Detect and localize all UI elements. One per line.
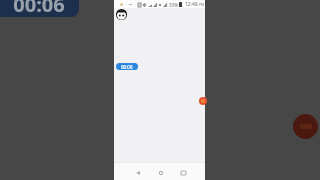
button[interactable]: Stop recording: [293, 114, 318, 139]
staticText: 00:06: [121, 64, 133, 70]
button[interactable]: 00:06: [116, 63, 138, 70]
button[interactable]: Home: [156, 168, 165, 177]
button[interactable]: Record: [199, 97, 207, 105]
staticText: 12:48: [185, 1, 198, 8]
staticText: PM: [199, 3, 204, 7]
staticText: 33%: [169, 2, 178, 8]
button[interactable]: Profile: [115, 8, 127, 20]
button[interactable]: Back: [133, 168, 142, 177]
button[interactable]: 00:06: [0, 0, 79, 17]
button[interactable]: Recents: [179, 168, 188, 177]
staticText: 00:06: [13, 0, 65, 16]
